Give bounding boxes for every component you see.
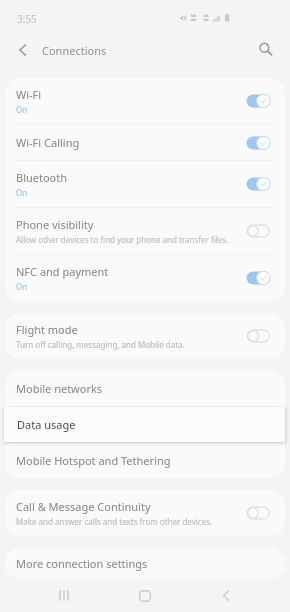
staticText: Flight mode [16,322,78,337]
staticText: Wi-Fi Calling [16,135,80,150]
button[interactable]: Turn off [245,270,271,286]
button[interactable]: Home [129,585,161,606]
button[interactable]: Navigate up [6,34,38,66]
staticText: Connections [42,43,107,58]
staticText: Data usage [17,417,76,432]
staticText: On [16,104,28,115]
staticText: On [16,187,28,198]
staticText: Call & Message Continuity [16,499,151,514]
staticText: More connection settings [16,556,148,571]
button[interactable]: Wi-Fi [5,78,285,124]
button[interactable]: Flight mode [5,313,285,359]
button[interactable]: Mobile Hotspot and Tethering [5,443,285,478]
button[interactable]: Phone visibility [5,208,285,254]
staticText: Make and answer calls and texts from oth… [16,516,213,527]
button[interactable]: Bluetooth [5,161,285,207]
button[interactable]: Turn off [245,176,271,192]
staticText: Phone visibility [16,217,94,232]
staticText: Mobile Hotspot and Tethering [16,453,171,468]
staticText: On [16,281,28,292]
staticText: NFC and payment [16,264,109,279]
button[interactable]: NFC and payment [5,255,285,301]
button[interactable]: Turn off [245,135,271,151]
button[interactable]: Turn on [245,505,271,521]
button[interactable]: Data usage [4,407,285,442]
staticText: Wi-Fi [16,87,42,102]
button[interactable]: Recent apps [48,585,80,606]
button[interactable]: Turn on [245,223,271,239]
button[interactable]: Wi-Fi Calling [5,125,285,160]
button[interactable]: Call & Message Continuity [5,490,285,536]
staticText: Allow other devices to find your phone a… [16,234,229,245]
button[interactable]: Back [210,585,242,606]
button[interactable]: Turn on [245,328,271,344]
staticText: Turn off calling, messaging, and Mobile … [16,339,185,350]
button[interactable]: More connection settings [5,548,285,579]
staticText: Bluetooth [16,170,68,185]
button[interactable]: Search [250,34,282,66]
staticText: Mobile networks [16,381,103,396]
button[interactable]: Turn off [245,93,271,109]
button[interactable]: Mobile networks [5,371,285,406]
staticText: 3:55 [17,12,37,26]
